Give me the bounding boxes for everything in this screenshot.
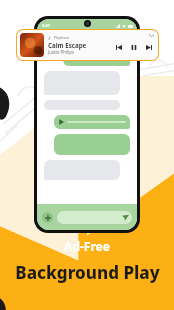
button[interactable]: Send [57,211,132,224]
staticText: 9:41 [42,23,50,28]
other: Send [122,214,129,221]
button[interactable]: Play voice message [54,115,130,129]
staticText: Calm Escape [48,41,87,49]
staticText: Justin Philips [48,49,75,55]
staticText: Ad-Free [64,238,110,254]
button[interactable]: Phiphone [17,30,158,60]
other: Play voice message [58,119,64,125]
button[interactable]: Pause [129,43,138,52]
staticText: Phiphone [54,35,70,40]
button[interactable]: Previous [114,43,123,52]
button[interactable]: Next [144,43,153,52]
button[interactable]: Attach [42,212,53,223]
button[interactable]: Expand [148,32,155,39]
staticText: Background Play [15,261,160,284]
